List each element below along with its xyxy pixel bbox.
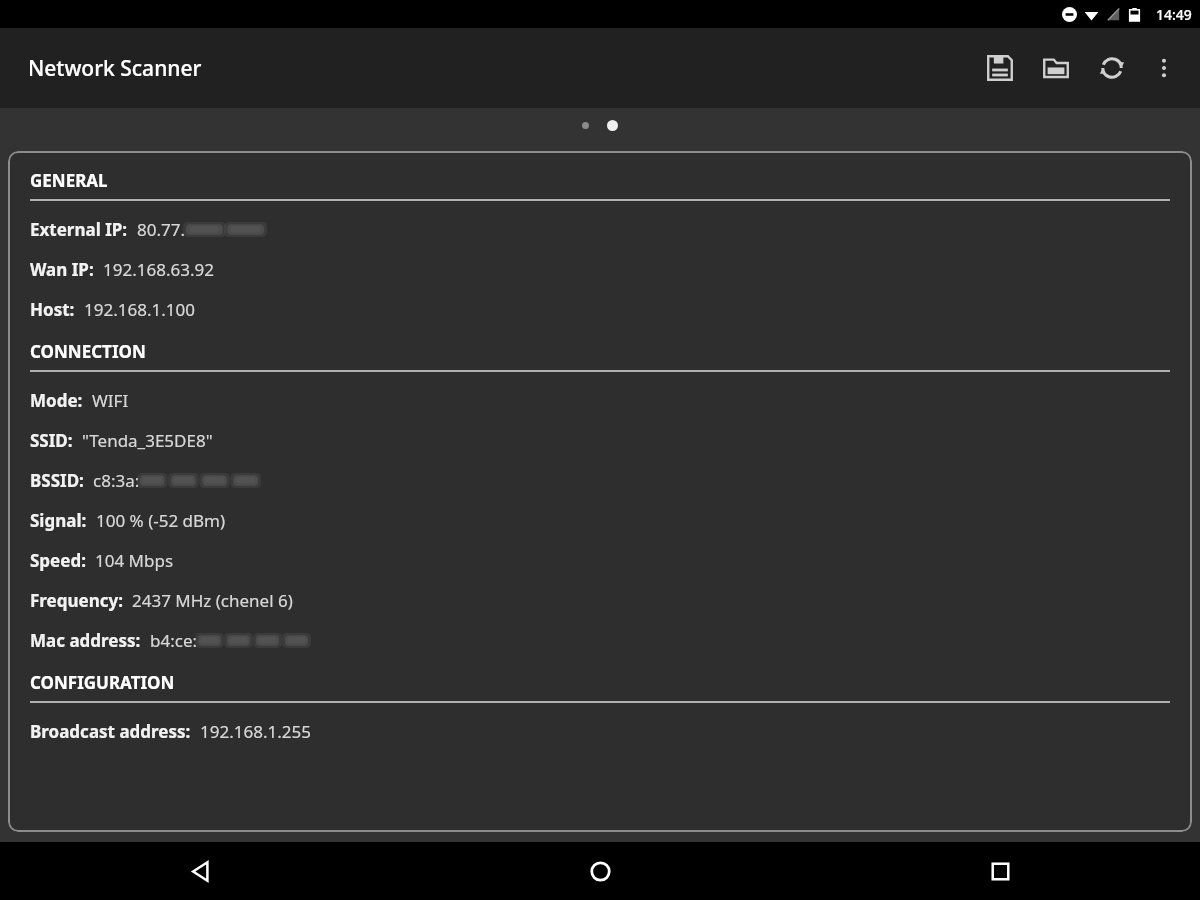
staticText: Frequency: (30, 589, 123, 612)
staticText: CONFIGURATION (30, 671, 175, 694)
button[interactable]: SSID: (8, 412, 1192, 452)
staticText: Network Scanner (28, 54, 202, 83)
button[interactable]: Speed: (8, 532, 1192, 572)
staticText: BSSID: (30, 469, 84, 492)
button[interactable]: Signal: (8, 492, 1192, 532)
staticText: CONNECTION (30, 340, 146, 363)
staticText: "Tenda_3E5DE8" (82, 429, 213, 452)
staticText: 192.168.1.100 (84, 298, 195, 321)
staticText: 104 Mbps (95, 549, 174, 572)
button[interactable]: BSSID: (8, 452, 1192, 492)
staticText: 2437 MHz (chenel 6) (132, 589, 293, 612)
button[interactable]: External IP: (8, 201, 1192, 241)
button[interactable]: Host: (8, 281, 1192, 321)
button[interactable]: Open folder (1028, 40, 1084, 96)
staticText: 14:49 (1156, 5, 1192, 24)
staticText: 80.77. (137, 218, 186, 241)
button[interactable]: Mode: (8, 372, 1192, 412)
button[interactable]: More options (1140, 44, 1188, 92)
staticText: Broadcast address: (30, 720, 191, 743)
button[interactable]: Wan IP: (8, 241, 1192, 281)
staticText: External IP: (30, 218, 128, 241)
button[interactable]: Save (972, 40, 1028, 96)
staticText: b4:ce: (150, 629, 198, 652)
button[interactable]: Frequency: (8, 572, 1192, 612)
button[interactable]: Page 2 (607, 120, 618, 131)
button[interactable]: Recents (800, 842, 1200, 900)
staticText: Mac address: (30, 629, 141, 652)
staticText: SSID: (30, 429, 73, 452)
button[interactable]: Broadcast address: (8, 703, 1192, 743)
staticText: 100 % (-52 dBm) (96, 509, 226, 532)
staticText: Signal: (30, 509, 87, 532)
button[interactable]: Home (400, 842, 800, 900)
staticText: Mode: (30, 389, 83, 412)
staticText: 192.168.63.92 (103, 258, 214, 281)
button[interactable]: Back (0, 842, 400, 900)
staticText: Speed: (30, 549, 86, 572)
button[interactable]: Mac address: (8, 612, 1192, 652)
staticText: Host: (30, 298, 75, 321)
button[interactable]: Page 1 (582, 122, 589, 129)
staticText: WIFI (92, 389, 129, 412)
staticText: Wan IP: (30, 258, 94, 281)
staticText: c8:3a: (93, 469, 140, 492)
staticText: 192.168.1.255 (200, 720, 311, 743)
staticText: GENERAL (30, 169, 108, 192)
button[interactable]: Refresh (1084, 40, 1140, 96)
